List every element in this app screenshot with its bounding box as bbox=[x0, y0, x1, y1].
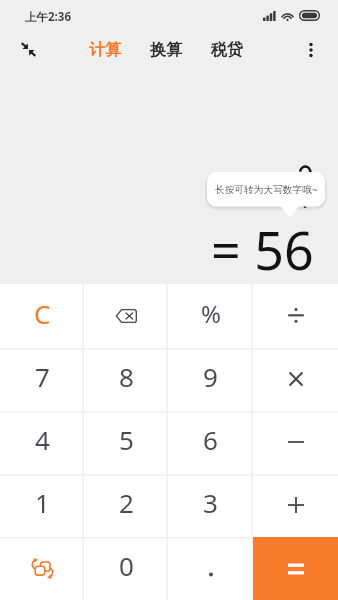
button[interactable] bbox=[168, 537, 253, 600]
staticText: 0 bbox=[119, 548, 134, 583]
staticText: 3 bbox=[203, 485, 218, 520]
button[interactable] bbox=[253, 537, 338, 600]
button[interactable] bbox=[84, 284, 168, 348]
button[interactable] bbox=[253, 411, 338, 474]
button[interactable] bbox=[253, 348, 338, 411]
staticText: 2 bbox=[119, 485, 134, 520]
button[interactable]: 8 bbox=[84, 348, 168, 411]
staticText: 6 bbox=[203, 422, 218, 457]
staticText: C bbox=[34, 296, 51, 331]
button[interactable]: 5 bbox=[84, 411, 168, 474]
button[interactable]: 7 bbox=[0, 348, 84, 411]
button[interactable]: 6 bbox=[168, 411, 253, 474]
button[interactable]: 9 bbox=[168, 348, 253, 411]
button[interactable] bbox=[0, 537, 84, 600]
staticText: 8 bbox=[119, 359, 134, 394]
button[interactable] bbox=[253, 474, 338, 537]
button[interactable]: % bbox=[168, 284, 253, 348]
staticText: % bbox=[201, 297, 221, 330]
button[interactable]: 4 bbox=[0, 411, 84, 474]
button[interactable]: C bbox=[0, 284, 84, 348]
staticText: 4 bbox=[35, 422, 50, 457]
button[interactable]: More options bbox=[295, 34, 327, 66]
button[interactable]: 1 bbox=[0, 474, 84, 537]
staticText: 9 bbox=[203, 359, 218, 394]
staticText: = 56 bbox=[211, 214, 314, 285]
staticText: 7 bbox=[35, 359, 50, 394]
staticText: 1 bbox=[35, 485, 50, 520]
button[interactable]: 换算 bbox=[149, 33, 183, 69]
button[interactable] bbox=[253, 284, 338, 348]
button[interactable]: Collapse bbox=[12, 33, 44, 65]
staticText: 5 bbox=[119, 422, 134, 457]
staticText: 计算 bbox=[89, 40, 121, 60]
staticText: 上午2:36 bbox=[25, 9, 71, 25]
button[interactable]: 2 bbox=[84, 474, 168, 537]
staticText: 长按可转为大写数字哦~ bbox=[215, 183, 318, 196]
staticText: 换算 bbox=[150, 40, 182, 60]
staticText: 税贷 bbox=[211, 40, 243, 60]
button[interactable]: 0 bbox=[84, 537, 168, 600]
button[interactable]: 计算 bbox=[88, 33, 122, 69]
button[interactable]: 税贷 bbox=[210, 33, 244, 69]
button[interactable]: 3 bbox=[168, 474, 253, 537]
